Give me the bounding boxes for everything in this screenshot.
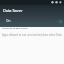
staticText: Unrestricted data access [2,27,28,30]
other: Data Saver switch [57,18,64,25]
staticText: Data Saver [3,8,23,13]
other: Status icons [51,0,62,5]
staticText: Apps allowed to use unrestricted data wh… [2,33,64,37]
button[interactable]: On [0,15,64,26]
staticText: On [6,19,11,23]
button[interactable]: Unrestricted data access [0,27,64,37]
